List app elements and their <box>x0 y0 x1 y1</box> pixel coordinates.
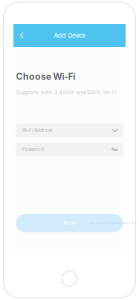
staticText: Add Device <box>54 32 85 39</box>
staticText: Next <box>63 220 75 226</box>
staticText: Supports both 2.4GHz and 5GHz Wi-Fi <box>16 89 116 96</box>
staticText: Choose Wi-Fi <box>16 71 75 82</box>
staticText: Password <box>22 147 44 152</box>
button[interactable]: Back <box>15 24 28 47</box>
staticText: Wi-Fi Address <box>22 128 52 133</box>
button[interactable]: Wi-Fi Address <box>16 124 123 137</box>
button[interactable]: Next <box>16 214 123 232</box>
button[interactable]: Password <box>16 143 123 156</box>
